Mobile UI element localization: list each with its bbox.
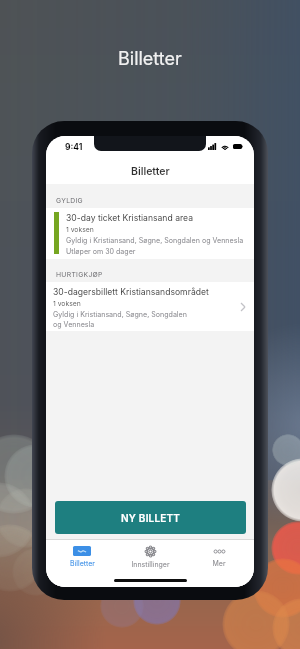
staticText: Gyldig i Kristiansand, Søgne, Songdalen … xyxy=(66,236,244,245)
staticText: GYLDIG xyxy=(56,196,83,204)
staticText: Mer xyxy=(212,559,226,567)
staticText: 1 voksen xyxy=(53,299,81,307)
staticText: Innstillinger xyxy=(131,560,170,568)
staticText: 9:41 xyxy=(65,142,83,152)
button[interactable]: 30-day ticket Kristiansand area xyxy=(46,208,254,259)
staticText: 30-dagersbillett Kristiansandsområdet xyxy=(53,287,209,297)
button[interactable]: 30-dagersbillett Kristiansandsområdet xyxy=(46,282,254,331)
staticText: 1 voksen xyxy=(66,225,94,233)
staticText: Billetter xyxy=(70,559,95,567)
staticText: Gyldig i Kristiansand, Søgne, Songdalen … xyxy=(53,310,187,328)
staticText: Billetter xyxy=(131,165,170,178)
staticText: HURTIGKJØP xyxy=(56,270,103,278)
button[interactable]: More tab xyxy=(186,540,252,567)
staticText: Billetter xyxy=(118,48,182,70)
staticText: Utløper om 30 dager xyxy=(66,247,136,256)
staticText: NY BILLETT xyxy=(121,512,181,524)
staticText: 30-day ticket Kristiansand area xyxy=(66,213,193,223)
button[interactable]: NY BILLETT xyxy=(55,501,246,534)
button[interactable]: Billetter tab xyxy=(49,540,115,567)
button[interactable]: Settings tab xyxy=(117,540,183,568)
